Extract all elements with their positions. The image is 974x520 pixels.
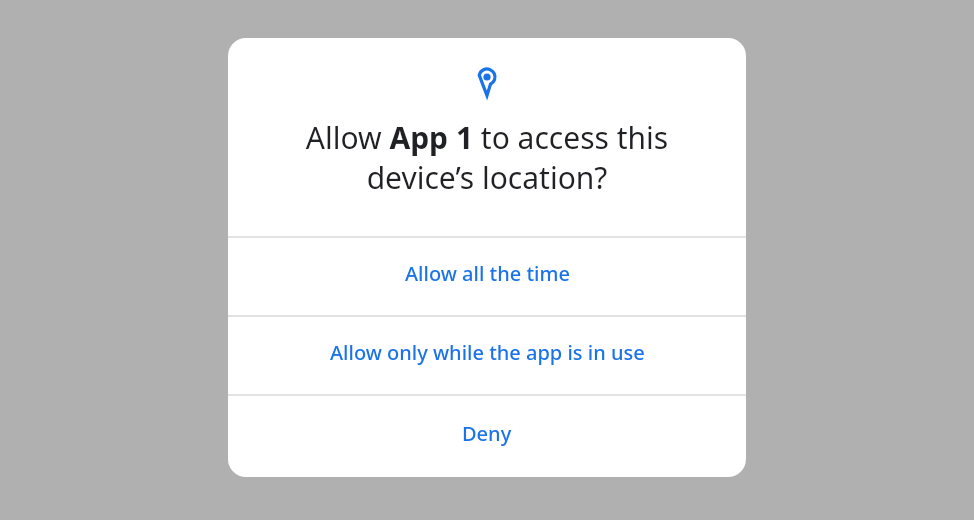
button[interactable]: Allow only while the app is in use	[228, 317, 746, 394]
staticText: Allow App 1 to access this device’s loca…	[228, 117, 746, 198]
staticText: Allow all the time	[405, 260, 570, 287]
staticText: Deny	[462, 420, 512, 447]
staticText: Allow only while the app is in use	[330, 339, 645, 366]
button[interactable]: Deny	[228, 396, 746, 477]
button[interactable]: Allow all the time	[228, 238, 746, 315]
